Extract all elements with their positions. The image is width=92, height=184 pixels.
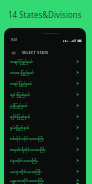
staticText: ကချင်ပြည်နယ်	[10, 58, 33, 66]
button[interactable]: ရှမ်းပြည်နယ်	[6, 122, 85, 133]
staticText: မွန်ပြည်နယ်	[10, 102, 28, 110]
staticText: စစ်ကိုင်းတိုင်းဒေသကြီး	[10, 135, 45, 143]
button[interactable]: မန္တလေးတိုင်းဒေသကြီး	[6, 177, 85, 184]
button[interactable]: ကရင်ပြည်နယ်	[6, 78, 85, 89]
staticText: ချင်းပြည်နယ်	[10, 91, 30, 99]
staticText: ကယားပြည်နယ်	[10, 69, 34, 77]
staticText: တနင်္သာရီတိုင်းဒေသကြီး	[10, 146, 46, 154]
staticText: 9:41	[11, 38, 18, 42]
staticText: မကွေးတိုင်းဒေသကြီး	[10, 168, 42, 176]
staticText: ရှမ်းပြည်နယ်	[10, 124, 30, 132]
button[interactable]: ကယားပြည်နယ်	[6, 67, 85, 78]
staticText: ပဲခူးတိုင်းဒေသကြီး	[10, 157, 38, 165]
staticText: ရခိုင်ပြည်နယ်	[10, 113, 31, 121]
button[interactable]: တနင်္သာရီတိုင်းဒေသကြီး	[6, 144, 85, 155]
button[interactable]: စစ်ကိုင်းတိုင်းဒေသကြီး	[6, 133, 85, 144]
staticText: ကရင်ပြည်နယ်	[10, 80, 32, 88]
staticText: SELECT STATE	[22, 50, 49, 55]
button[interactable]: ရခိုင်ပြည်နယ်	[6, 111, 85, 122]
staticText: မန္တလေးတိုင်းဒေသကြီး	[10, 177, 44, 184]
button[interactable]: ပဲခူးတိုင်းဒေသကြီး	[6, 155, 85, 166]
button[interactable]: Back	[9, 48, 19, 58]
button[interactable]: မွန်ပြည်နယ်	[6, 100, 85, 111]
staticText: 14 States&Divisions	[8, 9, 82, 20]
button[interactable]: မကွေးတိုင်းဒေသကြီး	[6, 166, 85, 177]
button[interactable]: ချင်းပြည်နယ်	[6, 89, 85, 100]
button[interactable]: ကချင်ပြည်နယ်	[6, 56, 85, 67]
